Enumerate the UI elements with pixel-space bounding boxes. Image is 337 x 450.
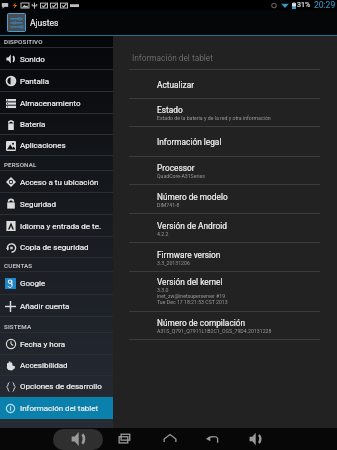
staticText: Processor bbox=[157, 163, 195, 173]
button[interactable]: Home bbox=[163, 432, 177, 446]
staticText: DIM741-8 bbox=[157, 202, 180, 208]
staticText: Fecha y hora bbox=[20, 340, 66, 349]
button[interactable]: Información del tablet bbox=[0, 397, 113, 419]
button[interactable]: Aplicaciones bbox=[0, 135, 113, 156]
button[interactable]: Batería bbox=[0, 114, 113, 135]
button[interactable]: Estado bbox=[113, 99, 337, 127]
staticText: Estado de la batería y de la red y otra … bbox=[157, 115, 271, 121]
staticText: QuadCore-A31Series bbox=[157, 173, 205, 179]
button[interactable]: Número de compilación bbox=[113, 312, 337, 340]
staticText: Idioma y entrada de te. bbox=[20, 222, 102, 231]
button[interactable]: Volume down bbox=[71, 431, 87, 447]
staticText: Batería bbox=[20, 120, 46, 129]
staticText: CUENTAS bbox=[4, 262, 33, 269]
staticText: 3.3_20131206 bbox=[157, 260, 190, 266]
staticText: Información del tablet bbox=[20, 404, 99, 413]
staticText: Sonido bbox=[20, 55, 45, 64]
button[interactable]: Copia de seguridad bbox=[0, 237, 113, 258]
staticText: Acceso a tu ubicación bbox=[20, 178, 99, 187]
button[interactable]: Accesibilidad bbox=[0, 355, 113, 376]
staticText: Pantalla bbox=[20, 77, 49, 86]
staticText: Estado bbox=[157, 105, 183, 115]
staticText: Información del tablet bbox=[132, 53, 213, 63]
staticText: inet_zw@inetsuperserver #19 bbox=[157, 293, 226, 299]
button[interactable]: Número de modelo bbox=[113, 185, 337, 214]
staticText: DISPOSITIVO bbox=[4, 38, 43, 45]
staticText: 20:29 bbox=[314, 0, 336, 10]
staticText: Ajustes bbox=[30, 18, 59, 28]
button[interactable]: Settings bbox=[8, 14, 25, 31]
staticText: Número de compilación bbox=[157, 318, 246, 328]
staticText: 4.2.2 bbox=[157, 231, 169, 237]
button[interactable]: Idioma y entrada de te. bbox=[0, 215, 113, 237]
staticText: Firmware version bbox=[157, 250, 221, 260]
button[interactable]: Processor bbox=[113, 157, 337, 185]
staticText: PERSONAL bbox=[4, 161, 37, 168]
button[interactable]: Google bbox=[0, 272, 113, 295]
button[interactable]: Pantalla bbox=[0, 70, 113, 92]
button[interactable]: Volume up bbox=[249, 432, 263, 446]
button[interactable]: Acceso a tu ubicación bbox=[0, 171, 113, 193]
button[interactable]: Actualizar bbox=[113, 70, 337, 99]
button[interactable]: Firmware version bbox=[113, 243, 337, 272]
button[interactable]: Versión de Android bbox=[113, 214, 337, 243]
staticText: Copia de seguridad bbox=[20, 243, 89, 252]
staticText: Información legal bbox=[157, 137, 222, 147]
staticText: Opciones de desarrollo bbox=[20, 382, 102, 391]
button[interactable]: Almacenamiento bbox=[0, 92, 113, 114]
staticText: Número de modelo bbox=[157, 192, 228, 202]
staticText: 3.3.0 bbox=[157, 287, 169, 293]
staticText: Versión de Android bbox=[157, 221, 227, 231]
button[interactable]: Sonido bbox=[0, 48, 113, 70]
staticText: Google bbox=[20, 279, 46, 288]
staticText: Tue Dec 17 18:21:53 CST 2013 bbox=[157, 299, 228, 305]
button[interactable]: Añadir cuenta bbox=[0, 295, 113, 317]
staticText: Versión del kernel bbox=[157, 277, 223, 287]
button[interactable]: Opciones de desarrollo bbox=[0, 376, 113, 397]
button[interactable]: Recents bbox=[118, 432, 132, 446]
staticText: Accesibilidad bbox=[20, 361, 68, 370]
staticText: Almacenamiento bbox=[20, 99, 81, 108]
staticText: SISTEMA bbox=[4, 323, 32, 330]
staticText: Actualizar bbox=[157, 80, 195, 90]
staticText: Añadir cuenta bbox=[20, 302, 70, 311]
button[interactable]: Fecha y hora bbox=[0, 333, 113, 355]
button[interactable]: Back bbox=[205, 432, 219, 446]
button[interactable]: Versión del kernel bbox=[113, 272, 337, 312]
staticText: A31S_Q791_Q7911L1B2C1_OGS_79D4.20131228 bbox=[157, 328, 272, 334]
staticText: Aplicaciones bbox=[20, 141, 66, 150]
button[interactable]: Seguridad bbox=[0, 193, 113, 215]
staticText: Seguridad bbox=[20, 200, 56, 209]
button[interactable]: Información legal bbox=[113, 127, 337, 157]
staticText: 31% bbox=[297, 1, 311, 9]
